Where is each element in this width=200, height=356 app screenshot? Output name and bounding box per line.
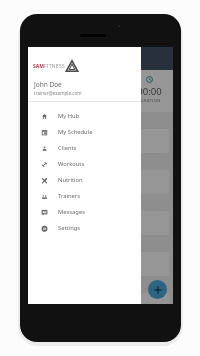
button[interactable] — [32, 129, 169, 153]
button[interactable]: Workouts — [28, 156, 141, 172]
staticText: Clients — [58, 144, 77, 152]
staticText: Nutrition — [58, 176, 83, 184]
button[interactable] — [32, 211, 169, 235]
staticText: 12:30 — [40, 85, 65, 98]
staticText: 00:00 — [137, 85, 162, 98]
button[interactable]: Trainers — [28, 188, 141, 204]
staticText: Settings — [58, 224, 81, 232]
button[interactable]: My Hub — [28, 108, 141, 124]
button[interactable] — [32, 170, 169, 194]
button[interactable]: Nutrition — [28, 172, 141, 188]
staticText: trainer@example.com — [34, 90, 82, 96]
staticText: My Schedule — [58, 128, 93, 136]
button[interactable]: 00:00 — [125, 70, 173, 112]
button[interactable]: 12:30 — [28, 70, 77, 112]
button[interactable]: Settings — [28, 220, 141, 236]
staticText: DURATION — [137, 98, 161, 104]
staticText: FITNESS — [44, 63, 65, 70]
staticText: SAM — [33, 63, 44, 70]
button[interactable] — [32, 293, 169, 304]
button[interactable]: My Schedule — [28, 124, 141, 140]
button[interactable] — [32, 252, 169, 276]
staticText: Workouts — [58, 160, 85, 168]
button[interactable]: 480 — [77, 70, 125, 112]
staticText: DURATION — [89, 98, 113, 104]
staticText: Messages — [58, 208, 85, 216]
button[interactable]: Clients — [28, 140, 141, 156]
staticText: John Doe — [34, 80, 62, 89]
button[interactable]: Messages — [28, 204, 141, 220]
staticText: Trainers — [58, 192, 80, 200]
staticText: My Hub — [58, 112, 80, 120]
button[interactable]: Add workout — [148, 280, 167, 299]
staticText: DURATION — [41, 98, 65, 104]
